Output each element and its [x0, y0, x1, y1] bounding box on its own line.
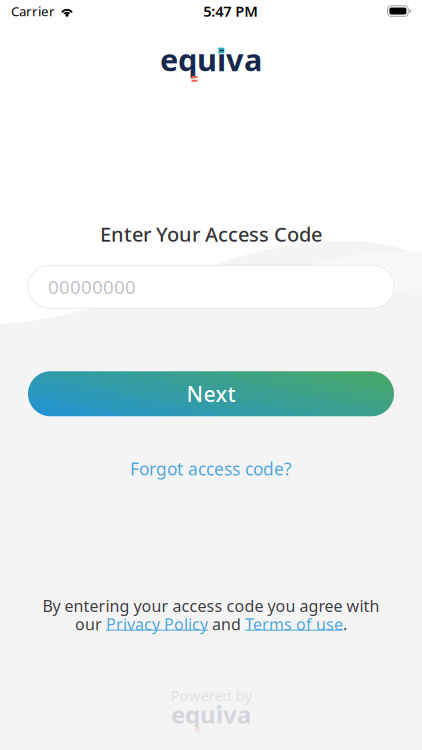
button[interactable]: Next: [0, 371, 422, 416]
staticText: Forgot access code?: [130, 457, 292, 480]
staticText: Terms of use: [245, 613, 343, 635]
staticText: Next: [186, 380, 235, 408]
staticText: Powered by: [170, 686, 251, 705]
button[interactable]: Privacy Policy: [106, 613, 208, 635]
staticText: Privacy Policy: [106, 613, 208, 635]
staticText: 00000000: [48, 274, 136, 299]
button[interactable]: Forgot access code?: [114, 452, 308, 485]
staticText: .: [343, 613, 347, 635]
staticText: equiva: [171, 698, 251, 730]
staticText: our: [75, 613, 106, 635]
staticText: and: [208, 613, 245, 635]
staticText: Enter Your Access Code: [100, 221, 322, 247]
staticText: Carrier: [11, 2, 55, 20]
staticText: equiva: [160, 39, 262, 80]
staticText: 5:47 PM: [203, 1, 258, 21]
staticText: By entering your access code you agree w…: [42, 595, 379, 616]
button[interactable]: Terms of use: [245, 613, 343, 635]
